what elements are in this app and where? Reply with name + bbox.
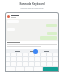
button[interactable]: [35, 53, 40, 56]
button[interactable]: [29, 53, 34, 56]
staticText: Kannada Keyboard: [0, 2, 64, 6]
button[interactable]: Send: [33, 49, 38, 54]
button[interactable]: [43, 67, 58, 71]
staticText: Kannada typing made simple: [0, 7, 64, 9]
